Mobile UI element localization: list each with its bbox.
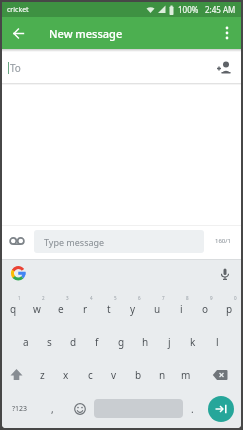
staticText: g	[118, 335, 125, 349]
staticText: 5	[114, 295, 117, 301]
staticText: t	[107, 302, 111, 316]
button[interactable]	[207, 52, 241, 83]
staticText: k	[190, 335, 196, 349]
staticText: a	[23, 335, 29, 349]
button[interactable]: u	[145, 292, 169, 325]
button[interactable]: b	[126, 358, 150, 391]
staticText: w	[33, 302, 41, 316]
button[interactable]: t	[97, 292, 121, 325]
staticText: ,	[51, 402, 54, 416]
button[interactable]: p	[217, 292, 241, 325]
staticText: l	[216, 335, 219, 349]
staticText: 3	[66, 295, 69, 301]
button[interactable]: i	[169, 292, 193, 325]
button[interactable]: r	[73, 292, 97, 325]
staticText: z	[40, 368, 45, 382]
staticText: i	[180, 302, 183, 316]
button[interactable]: o	[193, 292, 217, 325]
button[interactable]: n	[150, 358, 174, 391]
button[interactable]	[208, 396, 234, 422]
button[interactable]: l	[205, 325, 229, 358]
button[interactable]: j	[157, 325, 181, 358]
button[interactable]: z	[30, 358, 54, 391]
staticText: c	[88, 368, 93, 382]
button[interactable]: q	[2, 292, 25, 325]
button[interactable]: Type message	[34, 230, 204, 253]
button[interactable]: g	[109, 325, 133, 358]
button[interactable]: w	[25, 292, 49, 325]
staticText: q	[10, 302, 17, 316]
button[interactable]: y	[121, 292, 145, 325]
staticText: 9	[210, 295, 213, 301]
button[interactable]: x	[54, 358, 78, 391]
staticText: 2	[42, 295, 45, 301]
staticText: b	[135, 368, 142, 382]
button[interactable]	[2, 226, 32, 256]
staticText: ?123	[12, 404, 28, 414]
staticText: 6	[138, 295, 141, 301]
button[interactable]: f	[85, 325, 109, 358]
staticText: New message	[49, 26, 123, 41]
staticText: j	[168, 335, 171, 349]
staticText: e	[58, 302, 64, 316]
staticText: 2:45 AM	[205, 4, 236, 15]
button[interactable]	[66, 391, 94, 426]
staticText: u	[154, 302, 161, 316]
button[interactable]	[2, 358, 30, 391]
button[interactable]: .	[183, 391, 201, 426]
button[interactable]: a	[14, 325, 37, 358]
button[interactable]: k	[181, 325, 205, 358]
staticText: o	[202, 302, 209, 316]
button[interactable]: e	[49, 292, 73, 325]
staticText: 100%	[178, 4, 199, 15]
staticText: h	[142, 335, 149, 349]
button[interactable]: c	[78, 358, 102, 391]
staticText: 4	[90, 295, 93, 301]
staticText: n	[159, 368, 166, 382]
staticText: To	[10, 61, 21, 75]
button[interactable]	[201, 391, 241, 426]
staticText: m	[181, 368, 191, 382]
staticText: cricket	[7, 5, 29, 15]
staticText: Type message	[44, 236, 105, 248]
button[interactable]: To	[2, 52, 241, 83]
staticText: 8	[186, 295, 189, 301]
staticText: s	[47, 335, 52, 349]
staticText: v	[111, 368, 117, 382]
button[interactable]: v	[102, 358, 126, 391]
button[interactable]	[2, 260, 34, 287]
staticText: d	[70, 335, 77, 349]
button[interactable]: s	[37, 325, 61, 358]
staticText: p	[226, 302, 233, 316]
staticText: .	[191, 402, 194, 416]
staticText: r	[83, 302, 88, 316]
staticText: 1	[18, 295, 21, 301]
button[interactable]	[2, 17, 34, 49]
staticText: f	[95, 335, 99, 349]
button[interactable]: ,	[38, 391, 66, 426]
staticText: 7	[162, 295, 165, 301]
staticText: 160/1	[215, 237, 231, 245]
staticText: 0	[234, 295, 237, 301]
staticText: y	[130, 302, 136, 316]
button[interactable]	[213, 17, 241, 49]
button[interactable]	[209, 260, 241, 287]
button[interactable]: d	[61, 325, 85, 358]
button[interactable]	[198, 358, 241, 391]
button[interactable]: ?123	[2, 391, 38, 426]
button[interactable]: m	[174, 358, 198, 391]
button[interactable]: h	[133, 325, 157, 358]
staticText: x	[63, 368, 69, 382]
